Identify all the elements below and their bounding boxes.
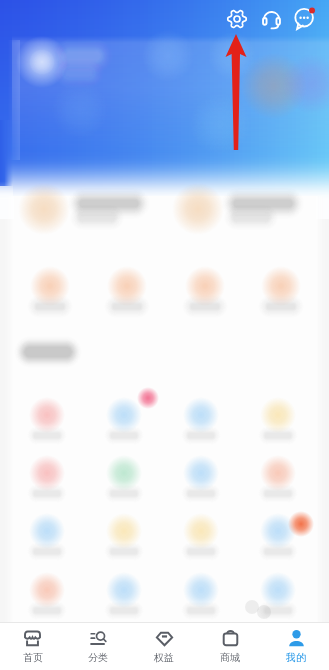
button[interactable]: Service 12 xyxy=(247,466,329,524)
button[interactable]: Service 2 xyxy=(83,350,165,408)
staticText: 我的 xyxy=(286,651,306,664)
button[interactable]: Service 9 xyxy=(0,466,83,524)
button[interactable]: Profile xyxy=(0,40,239,100)
button[interactable]: Quick entry 2 xyxy=(83,252,165,306)
button[interactable]: Service 7 xyxy=(165,408,247,466)
staticText: 权益 xyxy=(154,651,174,664)
button[interactable]: Wallet xyxy=(164,190,329,236)
button[interactable]: 我的 xyxy=(263,622,329,670)
button[interactable]: Messages xyxy=(288,2,322,36)
button[interactable]: Service 10 xyxy=(83,466,165,524)
button[interactable]: Quick entry 1 xyxy=(0,252,83,306)
button[interactable]: 商城 xyxy=(197,622,263,670)
button[interactable]: Service 11 xyxy=(165,466,247,524)
button[interactable]: Quick entry 4 xyxy=(247,252,329,306)
button[interactable]: Service 6 xyxy=(83,408,165,466)
button[interactable]: Service 16 xyxy=(247,524,329,570)
button[interactable]: Customer service xyxy=(254,2,288,36)
staticText: 首页 xyxy=(23,651,43,664)
button[interactable]: 分类 xyxy=(65,622,131,670)
button[interactable]: Settings xyxy=(220,2,254,36)
button[interactable]: Service 4 xyxy=(247,350,329,408)
button[interactable]: Service 5 xyxy=(0,408,83,466)
staticText: 分类 xyxy=(88,651,108,664)
button[interactable]: 首页 xyxy=(0,622,65,670)
button[interactable]: Service 8 xyxy=(247,408,329,466)
button[interactable]: Quick entry 3 xyxy=(165,252,247,306)
button[interactable]: Member level xyxy=(239,40,329,100)
button[interactable]: Service 13 xyxy=(0,524,83,570)
button[interactable]: 权益 xyxy=(131,622,197,670)
button[interactable]: Service 14 xyxy=(83,524,165,570)
button[interactable]: Service 1 xyxy=(0,350,83,408)
button[interactable]: Service 15 xyxy=(165,524,247,570)
button[interactable]: Service 3 xyxy=(165,350,247,408)
button[interactable]: Orders xyxy=(0,190,164,236)
staticText: 商城 xyxy=(220,651,240,664)
